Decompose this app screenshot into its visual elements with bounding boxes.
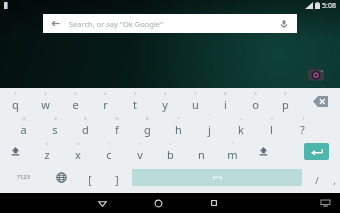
staticText: e (72, 97, 79, 112)
staticText: t (133, 97, 137, 112)
button[interactable]: % (101, 114, 132, 139)
staticText: ? (300, 122, 305, 137)
button[interactable]: Camera (306, 64, 326, 84)
button[interactable]: Shift (248, 139, 279, 164)
staticText: l (270, 122, 273, 137)
button[interactable]: { (31, 139, 62, 164)
button[interactable]: - (194, 114, 225, 139)
staticText: r (103, 97, 108, 112)
button[interactable]: ) (287, 114, 318, 139)
staticText: v (137, 147, 143, 162)
button[interactable]: Voice search (278, 18, 290, 30)
staticText: o (252, 97, 259, 112)
button[interactable]: / (304, 164, 329, 190)
staticText: 4 (104, 91, 107, 96)
button[interactable]: & (132, 114, 163, 139)
staticText: k (238, 122, 244, 137)
button[interactable]: 5 (120, 88, 150, 114)
staticText: q (12, 97, 19, 112)
staticText: x (75, 147, 81, 162)
staticText: g (144, 122, 151, 137)
button[interactable]: Back (85, 193, 119, 213)
button[interactable]: * (163, 114, 194, 139)
staticText: * (177, 116, 180, 121)
button[interactable]: Change language (46, 164, 76, 190)
staticText: 2 (44, 91, 47, 96)
button[interactable]: Back (43, 14, 297, 33)
staticText: w (41, 97, 50, 112)
staticText: # (54, 116, 57, 121)
staticText: & (146, 116, 149, 121)
button[interactable]: Hide keyboard (316, 193, 334, 213)
button[interactable]: } (62, 139, 93, 164)
staticText: a (20, 122, 27, 137)
staticText: _ (201, 141, 203, 146)
button[interactable]: = (155, 139, 186, 164)
staticText: / (315, 174, 319, 186)
staticText: m (227, 147, 238, 162)
button[interactable]: [ (76, 164, 103, 190)
staticText: s (52, 122, 58, 137)
button[interactable]: ( (256, 114, 287, 139)
button[interactable]: ] (103, 164, 130, 190)
staticText: 8 (224, 91, 227, 96)
staticText: - (209, 116, 211, 121)
button[interactable]: 1 (0, 88, 30, 114)
staticText: $ (84, 116, 87, 121)
staticText: 0 (284, 91, 287, 96)
staticText: p (282, 97, 289, 112)
button[interactable]: 7 (180, 88, 210, 114)
staticText: = (169, 141, 172, 146)
staticText: { (46, 141, 48, 146)
button[interactable]: Backspace (300, 88, 340, 114)
staticText: f (115, 122, 119, 137)
staticText: c (106, 147, 112, 162)
staticText: > (139, 141, 142, 146)
staticText: ?123 (17, 173, 30, 181)
button[interactable]: > (124, 139, 155, 164)
staticText: u (192, 97, 199, 112)
button[interactable]: + (225, 114, 256, 139)
button[interactable]: 9 (240, 88, 270, 114)
staticText: 5:08 (322, 1, 336, 11)
button[interactable]: 6 (150, 88, 180, 114)
button[interactable]: Enter (304, 143, 329, 160)
button[interactable]: 8 (210, 88, 240, 114)
button[interactable]: Space (132, 169, 302, 186)
staticText: " (232, 141, 234, 146)
button[interactable]: 2 (30, 88, 60, 114)
staticText: ] (115, 173, 119, 187)
staticText: 5 (134, 91, 137, 96)
staticText: j (208, 122, 211, 137)
staticText: z (44, 147, 50, 162)
button[interactable]: @ (8, 114, 39, 139)
staticText: 6 (164, 91, 167, 96)
staticText: } (77, 141, 79, 146)
staticText: 7 (194, 91, 197, 96)
button[interactable]: < (93, 139, 124, 164)
button[interactable]: Home (141, 193, 175, 213)
staticText: Search, or say "Ok Google" (69, 19, 164, 29)
staticText: d (82, 122, 89, 137)
button[interactable]: ?123 (0, 164, 46, 190)
staticText: i (224, 97, 227, 112)
button[interactable]: " (217, 139, 248, 164)
button[interactable]: Shift (0, 139, 31, 164)
staticText: ( (271, 116, 273, 121)
button[interactable]: 3 (60, 88, 90, 114)
button[interactable]: _ (186, 139, 217, 164)
staticText: @ (22, 116, 26, 121)
staticText: % (115, 116, 119, 121)
button[interactable]: 4 (90, 88, 120, 114)
button[interactable]: Back (50, 18, 61, 29)
staticText: + (240, 116, 243, 121)
button[interactable]: $ (70, 114, 101, 139)
staticText: b (167, 147, 174, 162)
staticText: 3 (74, 91, 77, 96)
button[interactable]: # (39, 114, 70, 139)
button[interactable]: 0 (270, 88, 300, 114)
staticText: 9 (254, 91, 257, 96)
button[interactable]: , (329, 164, 340, 190)
button[interactable]: Recent apps (197, 193, 231, 213)
staticText: n (198, 147, 205, 162)
